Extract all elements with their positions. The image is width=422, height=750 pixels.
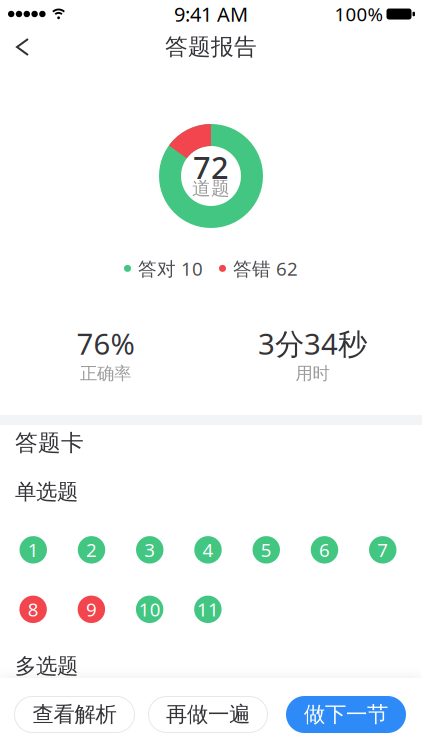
button[interactable]: 3 xyxy=(136,536,163,564)
button[interactable]: 查看解析 xyxy=(14,696,135,733)
staticText: 用时 xyxy=(295,363,329,384)
button[interactable]: 7 xyxy=(369,536,396,564)
staticText: 答对 10 xyxy=(138,256,203,281)
staticText: 多选题 xyxy=(15,653,78,679)
staticText: 9:41 AM xyxy=(174,1,248,27)
staticText: 单选题 xyxy=(15,479,78,505)
staticText: 4 xyxy=(202,537,213,562)
staticText: 10 xyxy=(139,597,161,622)
button[interactable]: 5 xyxy=(252,536,280,564)
staticText: 做下一节 xyxy=(304,701,388,728)
button[interactable]: 做下一节 xyxy=(286,696,406,733)
staticText: 答题卡 xyxy=(15,429,84,457)
button[interactable]: 再做一遍 xyxy=(148,696,268,733)
staticText: 再做一遍 xyxy=(166,701,250,728)
staticText: 答题报告 xyxy=(165,33,257,61)
staticText: 查看解析 xyxy=(32,701,116,728)
button[interactable]: 4 xyxy=(194,536,222,564)
staticText: 2 xyxy=(86,537,97,562)
staticText: 正确率 xyxy=(80,363,131,384)
button[interactable]: 1 xyxy=(19,536,47,564)
staticText: 答错 62 xyxy=(233,256,298,281)
button[interactable]: 10 xyxy=(136,596,163,623)
staticText: 5 xyxy=(261,537,272,562)
button[interactable]: 6 xyxy=(311,536,338,564)
staticText: 3 xyxy=(144,537,155,562)
staticText: 100% xyxy=(334,2,383,26)
staticText: 76% xyxy=(76,324,134,363)
staticText: 道题 xyxy=(192,177,230,200)
staticText: 9 xyxy=(86,597,97,622)
staticText: 6 xyxy=(319,537,330,562)
button[interactable]: 8 xyxy=(19,596,47,623)
button[interactable] xyxy=(0,28,35,66)
staticText: 8 xyxy=(28,597,39,622)
staticText: 3分34秒 xyxy=(258,324,367,363)
button[interactable]: 2 xyxy=(78,536,105,564)
staticText: 72 xyxy=(193,147,229,187)
button[interactable]: 9 xyxy=(78,596,105,623)
staticText: 1 xyxy=(28,537,39,562)
staticText: 7 xyxy=(377,537,388,562)
button[interactable]: 11 xyxy=(194,596,222,623)
staticText: 11 xyxy=(197,597,219,622)
